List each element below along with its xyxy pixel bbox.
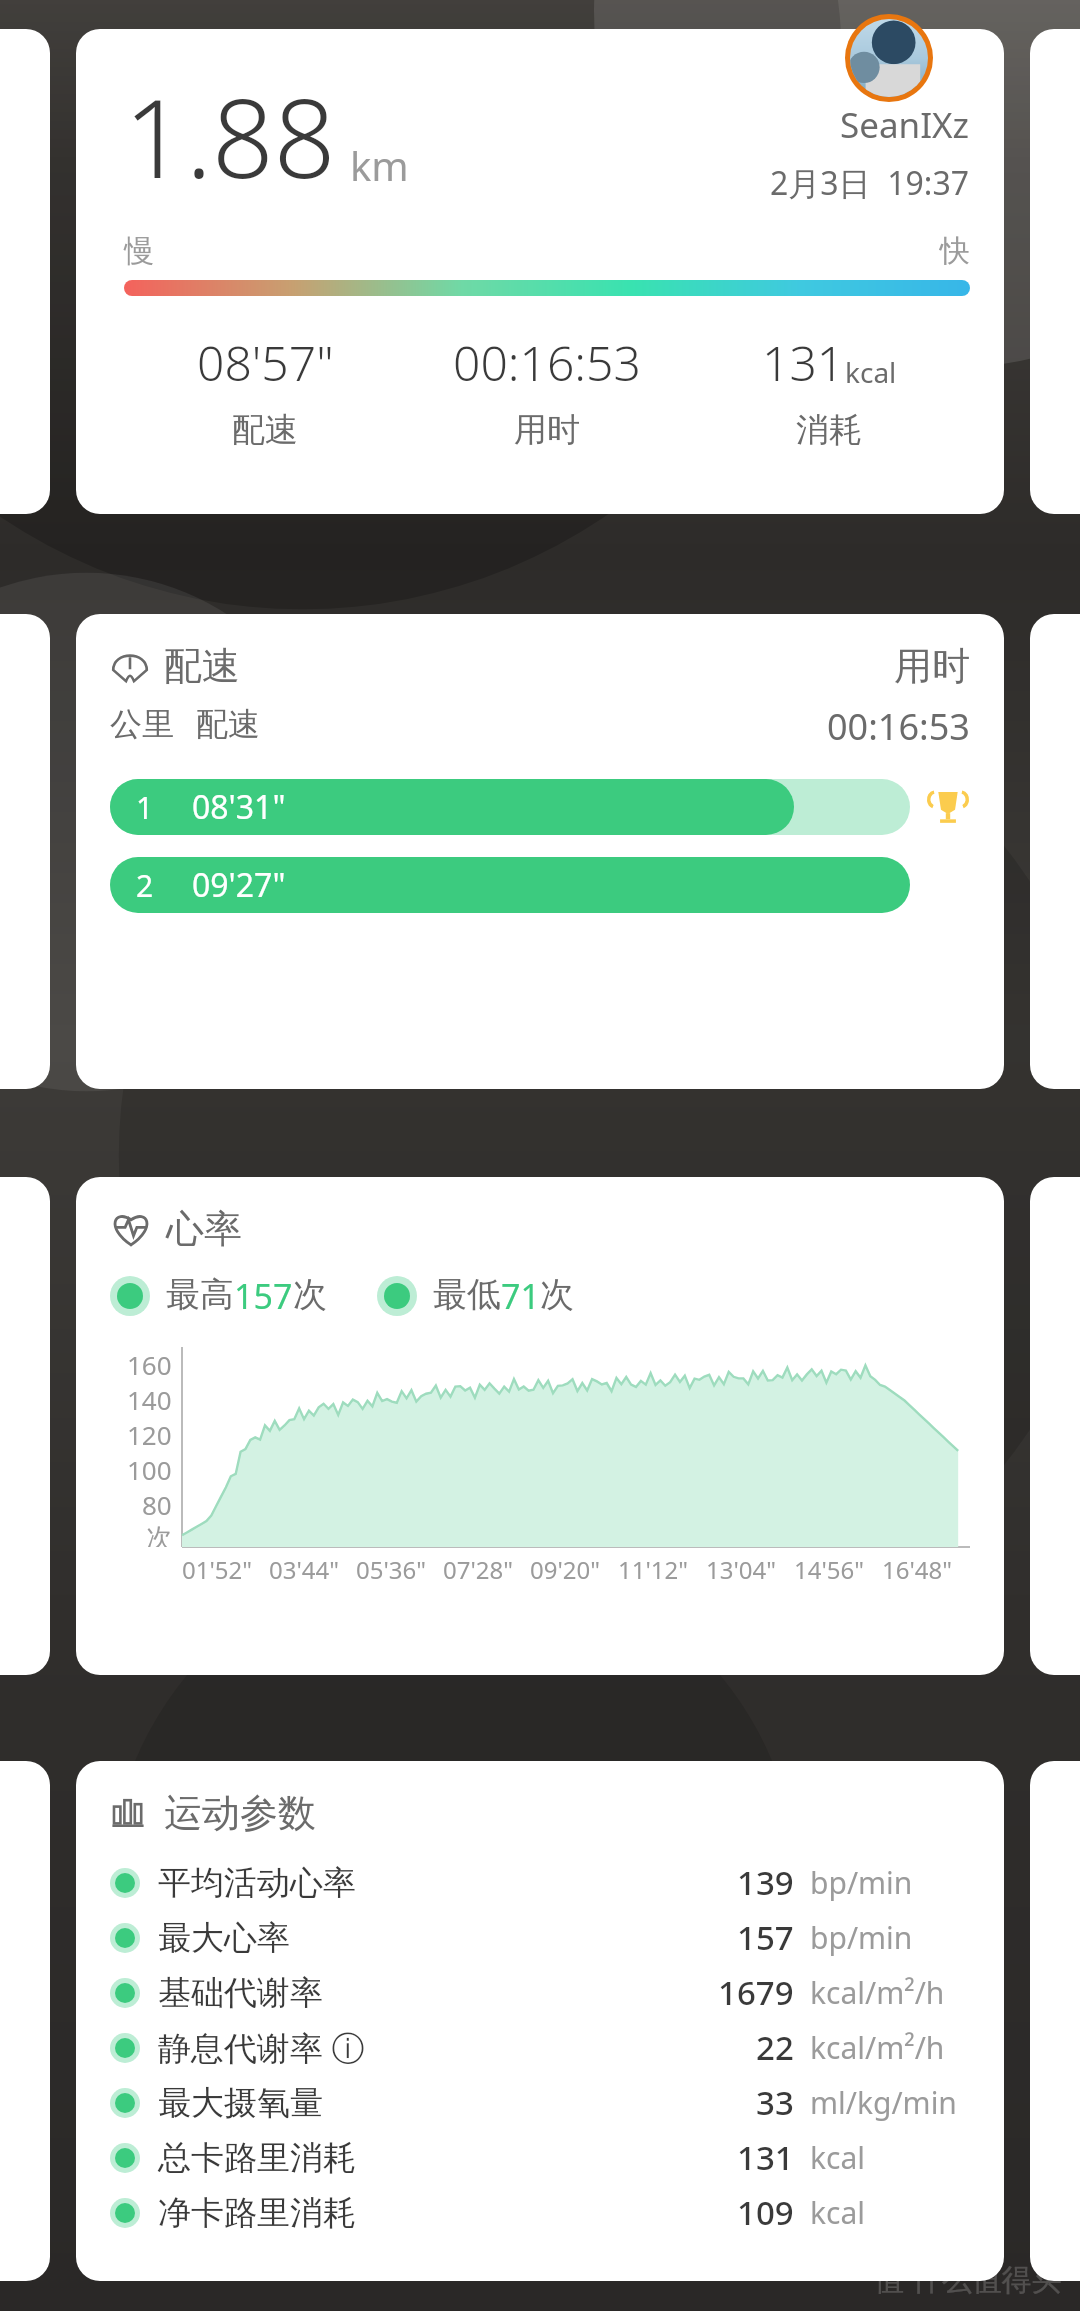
- staticText: 157: [737, 1915, 794, 1960]
- staticText: kcal: [810, 2137, 865, 2178]
- staticText: 13'04": [706, 1553, 794, 1586]
- staticText: 16'48": [882, 1553, 970, 1586]
- staticText: 配速: [232, 409, 298, 451]
- button[interactable]: 1.88: [76, 29, 1004, 514]
- staticText: km: [350, 138, 409, 192]
- staticText: 120: [127, 1417, 172, 1452]
- staticText: 11'12": [618, 1553, 706, 1586]
- staticText: 00:16:53: [453, 330, 641, 395]
- staticText: 08'31": [192, 785, 286, 829]
- staticText: ml/kg/min: [810, 2082, 957, 2123]
- staticText: 值 什么值得买: [874, 2258, 1062, 2299]
- staticText: 09'27": [192, 863, 286, 907]
- staticText: 03'44": [269, 1553, 356, 1586]
- staticText: 最大心率: [158, 1917, 290, 1959]
- staticText: 160: [127, 1347, 172, 1382]
- staticText: 最大摄氧量: [158, 2082, 323, 2124]
- button[interactable]: Profile avatar: [845, 14, 933, 102]
- staticText: 用时: [514, 409, 580, 451]
- staticText: 14'56": [794, 1553, 882, 1586]
- staticText: 131: [737, 2135, 794, 2180]
- staticText: 109: [737, 2190, 794, 2235]
- staticText: kcal: [845, 353, 897, 391]
- staticText: 最低: [433, 1273, 501, 1316]
- staticText: 05'36": [356, 1553, 443, 1586]
- staticText: 131: [762, 330, 845, 395]
- staticText: 08'57": [197, 330, 334, 395]
- staticText: 00:16:53: [827, 702, 970, 751]
- staticText: 1: [136, 787, 154, 828]
- staticText: 次: [146, 1522, 172, 1547]
- staticText: 1679: [718, 1970, 794, 2015]
- staticText: 100: [127, 1452, 172, 1487]
- staticText: 71: [501, 1273, 540, 1319]
- staticText: 次: [540, 1273, 574, 1316]
- staticText: SeanIXz: [840, 101, 970, 149]
- staticText: 快: [940, 232, 970, 270]
- staticText: 心率: [166, 1205, 242, 1253]
- staticText: 运动参数: [164, 1789, 316, 1837]
- staticText: 净卡路里消耗: [158, 2192, 356, 2234]
- staticText: 1.88: [124, 63, 336, 210]
- button[interactable]: 运动参数: [76, 1761, 1004, 2281]
- button[interactable]: 配速: [76, 614, 1004, 1089]
- staticText: kcal/m²/h: [810, 2027, 945, 2068]
- staticText: 消耗: [796, 409, 862, 451]
- staticText: 用时: [894, 642, 970, 690]
- staticText: kcal/m²/h: [810, 1972, 945, 2013]
- staticText: 慢: [124, 232, 154, 270]
- staticText: 公里: [110, 704, 174, 744]
- staticText: 140: [127, 1382, 172, 1417]
- staticText: 总卡路里消耗: [158, 2137, 356, 2179]
- staticText: 139: [737, 1860, 794, 1905]
- staticText: 次: [293, 1273, 327, 1316]
- staticText: 01'52": [182, 1553, 269, 1586]
- staticText: 最高: [166, 1273, 234, 1316]
- staticText: 配速: [196, 704, 260, 744]
- staticText: 静息代谢率 ⓘ: [158, 2025, 365, 2070]
- staticText: bp/min: [810, 1862, 913, 1903]
- staticText: 07'28": [443, 1553, 530, 1586]
- staticText: 33: [756, 2080, 794, 2125]
- staticText: 2: [136, 865, 154, 906]
- staticText: 09'20": [530, 1553, 618, 1586]
- staticText: 基础代谢率: [158, 1972, 323, 2014]
- staticText: 2月3日 19:37: [770, 161, 970, 205]
- staticText: bp/min: [810, 1917, 913, 1958]
- button[interactable]: 心率: [76, 1177, 1004, 1675]
- staticText: 80: [142, 1487, 172, 1522]
- staticText: 22: [756, 2025, 794, 2070]
- staticText: 157: [234, 1273, 293, 1319]
- staticText: 平均活动心率: [158, 1862, 356, 1904]
- staticText: kcal: [810, 2192, 865, 2233]
- staticText: 配速: [164, 642, 240, 690]
